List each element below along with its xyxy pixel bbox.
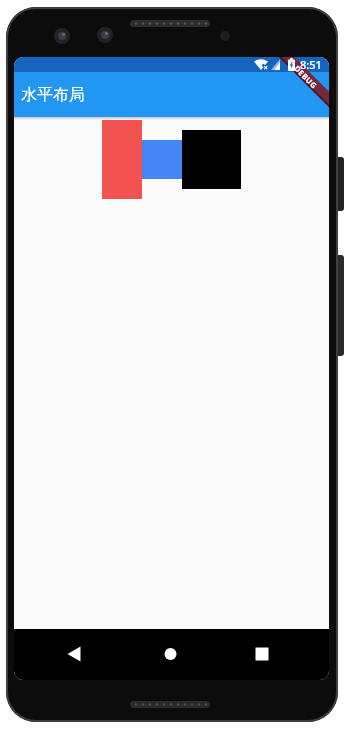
staticText: 8:51 <box>300 57 322 72</box>
button[interactable] <box>224 629 329 680</box>
staticText: DEBUG <box>292 63 320 91</box>
button[interactable] <box>119 629 224 680</box>
staticText: 水平布局 <box>21 85 85 105</box>
button[interactable] <box>14 629 119 680</box>
